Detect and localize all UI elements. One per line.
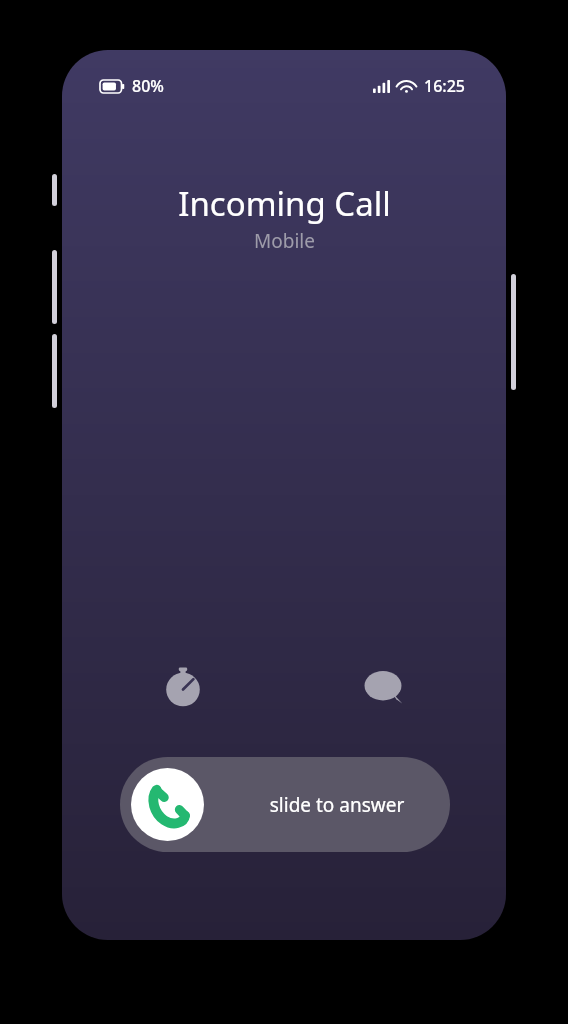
staticText: 16:25	[424, 75, 465, 97]
button[interactable]: Remind me later	[159, 663, 207, 711]
button[interactable]: Send message	[359, 663, 407, 711]
staticText: slide to answer	[224, 792, 450, 818]
button[interactable]: Answer call	[131, 768, 204, 841]
staticText: Mobile	[254, 228, 315, 254]
staticText: 80%	[132, 75, 164, 97]
button[interactable]: slide to answer	[120, 757, 450, 852]
staticText: Incoming Call	[178, 181, 391, 226]
